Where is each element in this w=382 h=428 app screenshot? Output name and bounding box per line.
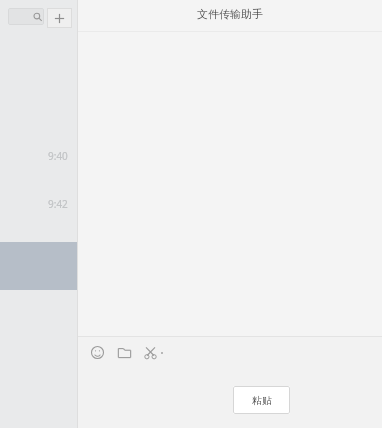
button[interactable]: 粘贴 <box>233 386 290 414</box>
button[interactable]: Screenshot <box>143 345 164 360</box>
button[interactable]: Add <box>47 8 72 28</box>
button[interactable]: 9:40 <box>0 146 77 166</box>
staticText: 粘贴 <box>252 394 272 407</box>
button[interactable]: Search <box>8 8 44 25</box>
staticText: 9:42 <box>48 197 68 211</box>
staticText: 文件传输助手 <box>197 7 263 21</box>
button[interactable]: 9:42 <box>0 194 77 214</box>
staticText: 9:40 <box>48 149 68 163</box>
button[interactable]: Emoji <box>89 344 106 361</box>
button[interactable]: Files <box>116 344 133 361</box>
